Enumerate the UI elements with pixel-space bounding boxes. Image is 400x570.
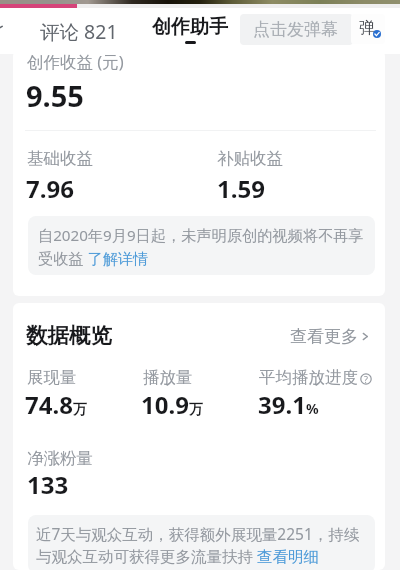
staticText: 弹 xyxy=(359,18,375,38)
staticText: 74.8万 xyxy=(25,388,87,421)
button[interactable]: 点击发弹幕 xyxy=(240,14,353,45)
button[interactable]: 查看更多 xyxy=(286,322,375,351)
button[interactable]: 近7天与观众互动，获得额外展现量2251，持续与观众互动可获得更多流量扶持 查看… xyxy=(28,515,375,570)
staticText: 净涨粉量 xyxy=(27,448,93,469)
staticText: 播放量 xyxy=(143,367,193,388)
staticText: 9.55 xyxy=(26,76,84,115)
button[interactable]: 评论 821 xyxy=(32,11,126,52)
staticText: 自2020年9月9日起，未声明原创的视频将不再享受收益 了解详情 xyxy=(38,225,373,268)
staticText: 补贴收益 xyxy=(217,148,283,169)
other: Help xyxy=(360,373,372,385)
staticText: 数据概览 xyxy=(26,322,112,349)
staticText: 39.1% xyxy=(258,388,319,421)
staticText: 查看更多 xyxy=(290,326,358,347)
staticText: 基础收益 xyxy=(27,148,93,169)
staticText: 1.59 xyxy=(217,172,265,205)
button[interactable]: Collapse xyxy=(0,21,9,39)
button[interactable]: 创作助手 xyxy=(144,13,236,46)
staticText: 平均播放进度 xyxy=(259,367,358,388)
staticText: 133 xyxy=(27,468,69,501)
staticText: 创作助手 xyxy=(152,15,228,39)
button[interactable]: 弹 xyxy=(351,14,385,44)
staticText: 创作收益 (元) xyxy=(27,50,124,73)
staticText: 评论 821 xyxy=(40,18,118,45)
staticText: 10.9万 xyxy=(141,388,203,421)
button[interactable]: 自2020年9月9日起，未声明原创的视频将不再享受收益 了解详情 xyxy=(28,216,375,275)
staticText: 展现量 xyxy=(27,367,77,388)
staticText: ? xyxy=(364,373,368,385)
staticText: 7.96 xyxy=(26,172,74,205)
staticText: 近7天与观众互动，获得额外展现量2251，持续与观众互动可获得更多流量扶持 查看… xyxy=(36,523,367,567)
staticText: 点击发弹幕 xyxy=(253,19,338,40)
